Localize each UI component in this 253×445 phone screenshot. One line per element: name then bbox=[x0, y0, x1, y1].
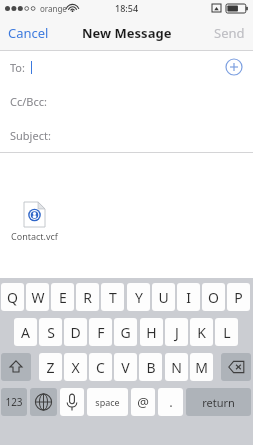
button[interactable]: Delete bbox=[221, 353, 251, 381]
staticText: F bbox=[97, 323, 105, 342]
button[interactable]: H bbox=[140, 318, 163, 346]
button[interactable]: X bbox=[64, 353, 87, 381]
button[interactable]: D bbox=[64, 318, 87, 346]
button[interactable]: Subject: bbox=[0, 118, 253, 152]
staticText: Cancel bbox=[8, 24, 49, 42]
button[interactable]: space bbox=[87, 388, 128, 416]
staticText: @ bbox=[137, 393, 149, 411]
button[interactable]: O bbox=[202, 283, 225, 311]
button[interactable]: E bbox=[51, 283, 74, 311]
staticText: O bbox=[208, 288, 219, 307]
button[interactable]: J bbox=[165, 318, 188, 346]
staticText: K bbox=[197, 323, 206, 342]
button[interactable]: M bbox=[190, 353, 213, 381]
button[interactable]: . bbox=[158, 388, 183, 416]
staticText: To: bbox=[10, 60, 25, 75]
staticText: Y bbox=[135, 288, 143, 307]
staticText: return bbox=[202, 395, 235, 410]
button[interactable]: F bbox=[89, 318, 112, 346]
button[interactable]: K bbox=[190, 318, 213, 346]
button[interactable]: P bbox=[227, 283, 250, 311]
staticText: space bbox=[95, 396, 120, 408]
button[interactable]: To: bbox=[0, 50, 253, 84]
button[interactable]: Shift bbox=[1, 353, 31, 381]
button[interactable]: W bbox=[26, 283, 49, 311]
button[interactable]: Dictate bbox=[60, 388, 84, 416]
button[interactable]: R bbox=[76, 283, 99, 311]
button[interactable]: @ bbox=[131, 388, 155, 416]
staticText: J bbox=[175, 323, 179, 342]
staticText: V bbox=[121, 358, 130, 377]
button[interactable]: Z bbox=[39, 353, 62, 381]
button[interactable]: S bbox=[39, 318, 62, 346]
button[interactable]: Switch keyboard bbox=[30, 388, 57, 416]
staticText: Cc/Bcc: bbox=[10, 94, 47, 109]
button[interactable]: I bbox=[177, 283, 200, 311]
staticText: Subject: bbox=[10, 128, 51, 143]
button[interactable]: N bbox=[165, 353, 188, 381]
staticText: W bbox=[31, 288, 45, 307]
staticText: 18:54 bbox=[115, 2, 139, 14]
staticText: Send bbox=[214, 24, 245, 42]
button[interactable]: C bbox=[89, 353, 112, 381]
staticText: P bbox=[234, 288, 243, 307]
staticText: N bbox=[171, 358, 182, 377]
staticText: New Message bbox=[82, 24, 172, 42]
button[interactable]: B bbox=[139, 353, 162, 381]
button[interactable]: Add contact bbox=[225, 58, 243, 76]
staticText: Z bbox=[46, 358, 55, 377]
button[interactable]: return bbox=[186, 388, 251, 416]
staticText: . bbox=[169, 393, 173, 411]
staticText: R bbox=[83, 288, 92, 307]
staticText: E bbox=[59, 288, 67, 307]
staticText: T bbox=[109, 288, 117, 307]
button[interactable]: Cc/Bcc: bbox=[0, 84, 253, 118]
staticText: 123 bbox=[5, 395, 23, 409]
staticText: G bbox=[120, 323, 131, 342]
button[interactable]: Contact.vcf bbox=[11, 202, 58, 242]
staticText: D bbox=[70, 323, 81, 342]
button[interactable]: A bbox=[14, 318, 37, 346]
button[interactable]: T bbox=[101, 283, 124, 311]
staticText: C bbox=[96, 358, 105, 377]
staticText: H bbox=[146, 323, 157, 342]
staticText: Q bbox=[7, 288, 18, 307]
staticText: L bbox=[223, 323, 231, 342]
button[interactable]: Q bbox=[1, 283, 24, 311]
button[interactable]: Y bbox=[127, 283, 150, 311]
button[interactable]: Send bbox=[214, 24, 245, 42]
staticText: U bbox=[158, 288, 169, 307]
staticText: M bbox=[195, 358, 208, 377]
button[interactable]: G bbox=[114, 318, 137, 346]
staticText: orange bbox=[40, 3, 67, 14]
staticText: A bbox=[21, 323, 30, 342]
button[interactable]: V bbox=[114, 353, 137, 381]
button[interactable]: U bbox=[152, 283, 175, 311]
button[interactable]: Cancel bbox=[8, 24, 49, 42]
staticText: Contact.vcf bbox=[11, 230, 58, 242]
staticText: B bbox=[146, 358, 156, 377]
staticText: S bbox=[47, 323, 55, 342]
button[interactable]: L bbox=[215, 318, 238, 346]
staticText: I bbox=[186, 288, 191, 307]
button[interactable]: 123 bbox=[1, 388, 27, 416]
staticText: X bbox=[71, 358, 80, 377]
